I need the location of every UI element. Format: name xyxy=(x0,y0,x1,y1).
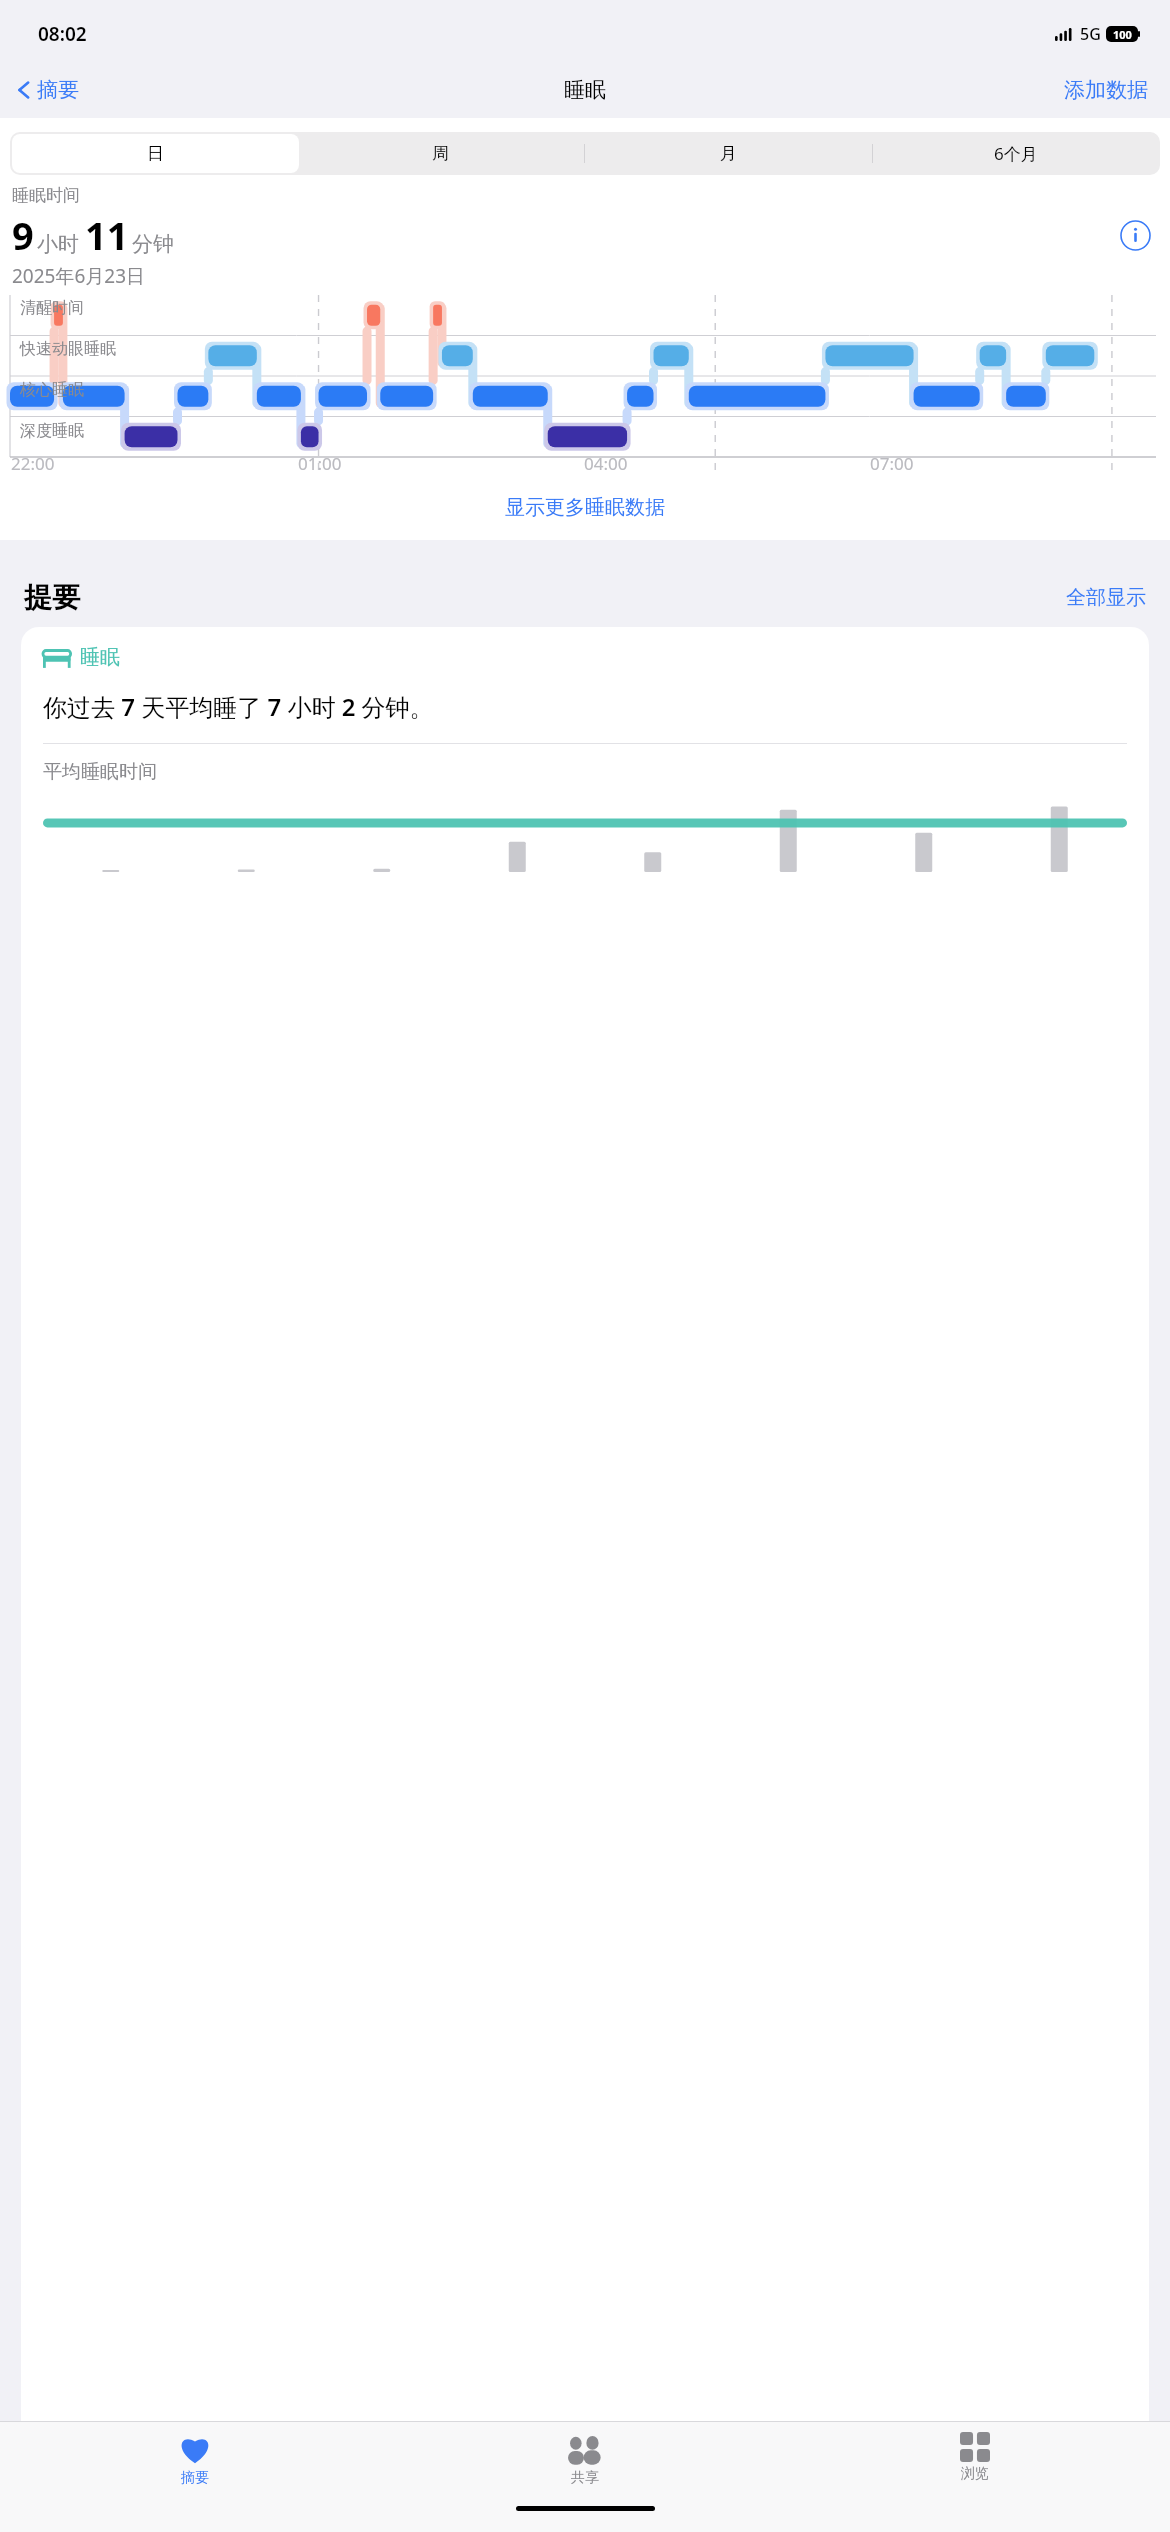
staticText: 5G xyxy=(1080,23,1101,45)
button[interactable]: 月 xyxy=(584,132,872,175)
button[interactable]: 周 xyxy=(297,132,584,175)
staticText: 提要 xyxy=(24,580,80,615)
button[interactable]: 信息 xyxy=(1117,217,1154,254)
button[interactable]: 显示更多睡眠数据 xyxy=(501,491,669,524)
button[interactable]: 共享 xyxy=(390,2422,780,2506)
button[interactable]: 日 xyxy=(12,134,299,173)
button[interactable]: 摘要 xyxy=(14,73,83,107)
staticText: 04:00 xyxy=(584,452,628,475)
staticText: 核心睡眠 xyxy=(20,380,84,400)
staticText: 01:00 xyxy=(298,452,342,475)
staticText: 睡眠时间 xyxy=(12,185,80,206)
staticText: 周 xyxy=(432,143,449,164)
staticText: 分钟 xyxy=(132,231,174,257)
staticText: 共享 xyxy=(571,2469,599,2487)
staticText: 6个月 xyxy=(994,142,1038,165)
staticText: 浏览 xyxy=(961,2465,989,2483)
button[interactable]: 浏览 xyxy=(780,2422,1170,2506)
staticText: 睡眠 xyxy=(80,645,120,670)
staticText: 08:02 xyxy=(38,21,87,47)
staticText: 日 xyxy=(147,143,164,164)
staticText: 2025年6月23日 xyxy=(12,263,146,289)
button[interactable]: 睡眠 xyxy=(21,627,1149,2421)
staticText: 深度睡眠 xyxy=(20,421,84,441)
staticText: 快速动眼睡眠 xyxy=(20,339,116,359)
button[interactable]: 摘要 xyxy=(0,2422,390,2506)
staticText: 07:00 xyxy=(870,452,914,475)
staticText: 平均睡眠时间 xyxy=(43,760,157,784)
button[interactable]: 添加数据 xyxy=(1060,73,1152,107)
staticText: 睡眠 xyxy=(564,77,606,103)
staticText: 月 xyxy=(720,143,737,164)
staticText: 小时 xyxy=(37,231,79,257)
button[interactable]: 6个月 xyxy=(872,132,1160,175)
button[interactable]: 全部显示 xyxy=(1062,581,1150,614)
staticText: 摘要 xyxy=(181,2469,209,2487)
button[interactable]: 日 xyxy=(10,132,297,175)
staticText: 9 xyxy=(12,209,34,261)
staticText: 22:00 xyxy=(11,452,55,475)
staticText: 11 xyxy=(85,209,129,261)
staticText: 日 xyxy=(145,143,162,164)
staticText: 摘要 xyxy=(37,77,79,103)
staticText: 你过去 7 天平均睡了 7 小时 2 分钟。 xyxy=(43,690,434,723)
staticText: 清醒时间 xyxy=(20,298,84,318)
staticText: 100 xyxy=(1113,27,1132,42)
